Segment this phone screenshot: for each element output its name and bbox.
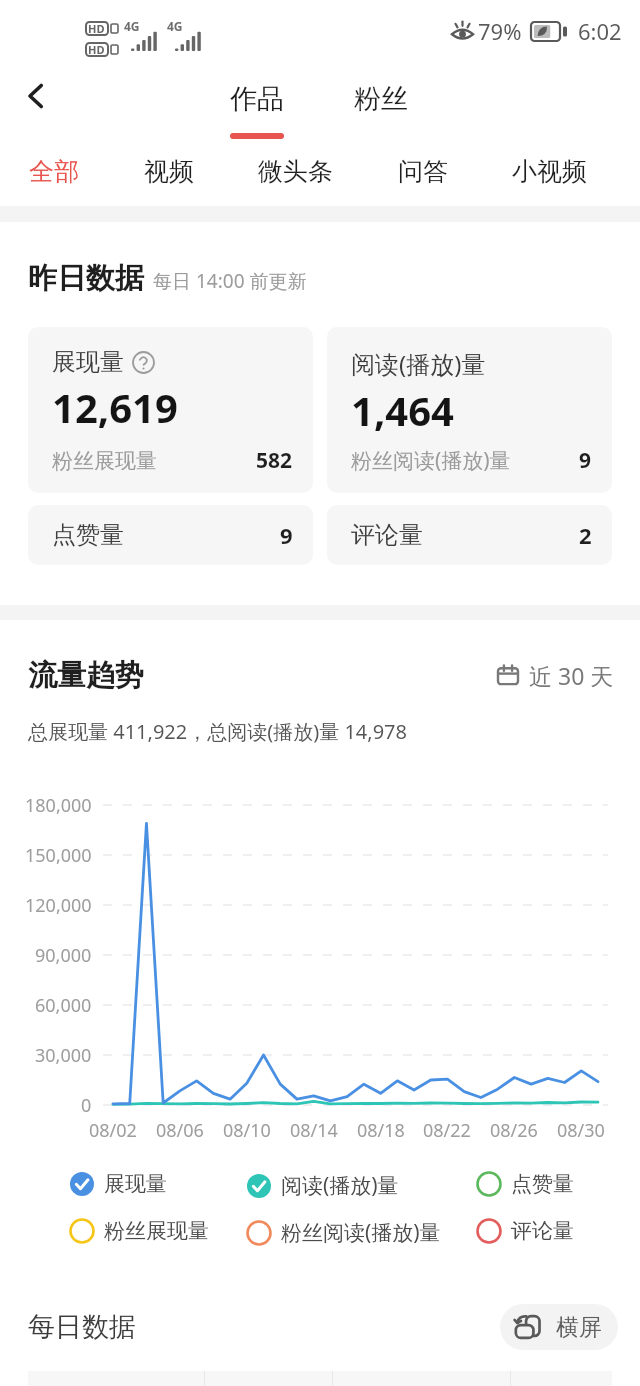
- staticText: 点赞量: [52, 520, 124, 550]
- staticText: 作品: [230, 82, 284, 116]
- staticText: 点赞量: [511, 1171, 574, 1197]
- staticText: 4G: [167, 18, 183, 34]
- button[interactable]: 展现量: [28, 327, 313, 493]
- staticText: 79%: [478, 16, 522, 46]
- staticText: 展现量: [104, 1171, 167, 1197]
- button[interactable]: 全部: [19, 146, 89, 197]
- staticText: 9: [280, 520, 293, 550]
- button[interactable]: 横屏: [500, 1304, 618, 1350]
- staticText: HD: [88, 21, 105, 36]
- staticText: 阅读(播放)量: [281, 1171, 399, 1200]
- staticText: 近 30 天: [529, 660, 614, 691]
- staticText: 1,464: [351, 383, 454, 437]
- staticText: 180,000: [25, 793, 92, 818]
- staticText: 30,000: [35, 1043, 92, 1068]
- staticText: 粉丝阅读(播放)量: [351, 446, 511, 475]
- staticText: 08/26: [490, 1118, 538, 1143]
- staticText: 每日数据: [28, 1310, 136, 1344]
- staticText: 粉丝展现量: [52, 448, 157, 474]
- staticText: 08/14: [290, 1118, 338, 1143]
- staticText: 08/10: [223, 1118, 271, 1143]
- button[interactable]: 微头条: [248, 146, 343, 197]
- staticText: 4G: [124, 18, 140, 34]
- staticText: 2: [579, 520, 592, 550]
- staticText: 90,000: [35, 943, 92, 968]
- staticText: 0: [81, 1093, 92, 1118]
- staticText: 小视频: [512, 156, 587, 187]
- staticText: 60,000: [35, 993, 92, 1018]
- staticText: 9: [579, 446, 592, 475]
- button[interactable]: 点赞量: [476, 1171, 574, 1197]
- button[interactable]: 小视频: [502, 146, 597, 197]
- staticText: 全部: [29, 156, 79, 187]
- staticText: 昨日数据: [28, 260, 144, 297]
- staticText: 阅读(播放)量: [351, 347, 486, 380]
- staticText: 评论量: [511, 1218, 574, 1244]
- staticText: 粉丝: [354, 82, 408, 116]
- button[interactable]: 问答: [388, 146, 458, 197]
- button[interactable]: 粉丝阅读(播放)量: [246, 1218, 441, 1247]
- staticText: 横屏: [556, 1313, 602, 1342]
- staticText: 展现量: [52, 347, 124, 377]
- button[interactable]: 粉丝: [340, 82, 422, 116]
- button[interactable]: Back: [12, 72, 60, 120]
- button[interactable]: 阅读(播放)量: [327, 327, 612, 493]
- button[interactable]: 阅读(播放)量: [246, 1171, 399, 1200]
- button[interactable]: 评论量: [476, 1218, 574, 1244]
- staticText: 视频: [144, 156, 194, 187]
- staticText: 每日 14:00 前更新: [153, 268, 307, 294]
- button[interactable]: 评论量: [327, 505, 612, 565]
- staticText: 粉丝阅读(播放)量: [281, 1218, 441, 1247]
- button[interactable]: 作品: [216, 82, 298, 139]
- staticText: HD: [88, 42, 105, 57]
- staticText: 150,000: [25, 843, 92, 868]
- staticText: 微头条: [258, 156, 333, 187]
- staticText: 评论量: [351, 520, 423, 550]
- button[interactable]: 点赞量: [28, 505, 313, 565]
- staticText: 08/06: [156, 1118, 204, 1143]
- button[interactable]: 视频: [134, 146, 204, 197]
- staticText: 08/22: [423, 1118, 471, 1143]
- button[interactable]: 粉丝展现量: [69, 1218, 209, 1244]
- staticText: 120,000: [25, 893, 92, 918]
- staticText: 问答: [398, 156, 448, 187]
- staticText: 粉丝展现量: [104, 1218, 209, 1244]
- staticText: 582: [256, 446, 293, 475]
- staticText: 12,619: [52, 380, 178, 434]
- staticText: 08/02: [89, 1118, 137, 1143]
- staticText: 流量趋势: [28, 657, 144, 694]
- staticText: 08/18: [357, 1118, 405, 1143]
- staticText: 总展现量 411,922，总阅读(播放)量 14,978: [28, 718, 407, 745]
- staticText: 6:02: [578, 16, 622, 46]
- button[interactable]: 展现量: [69, 1171, 167, 1197]
- staticText: 08/30: [557, 1118, 605, 1143]
- button[interactable]: 近 30 天: [490, 654, 620, 697]
